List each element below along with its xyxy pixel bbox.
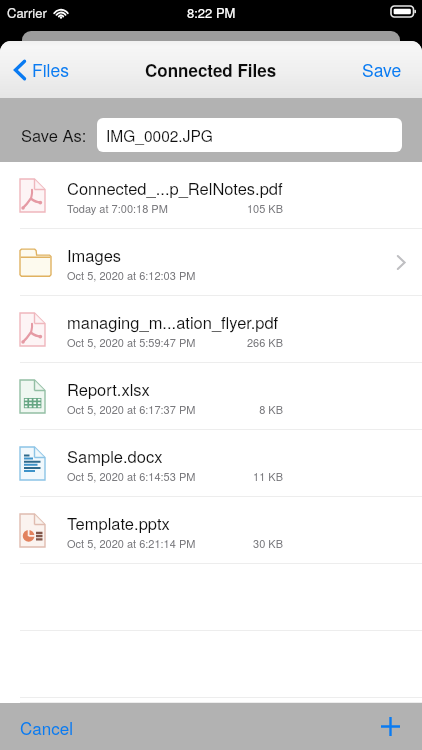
staticText: Connected Files [145, 58, 277, 82]
button[interactable]: Add [367, 709, 422, 744]
button[interactable]: Connected_...p_RelNotes.pdf [0, 162, 422, 229]
button[interactable]: Save [348, 49, 422, 90]
staticText: Save As: [21, 123, 87, 147]
staticText: Oct 5, 2020 at 5:59:47 PM [67, 334, 217, 350]
button[interactable]: managing_m...ation_flyer.pdf [0, 296, 422, 363]
staticText: Carrier [7, 3, 47, 22]
staticText: Report.xlsx [67, 377, 150, 401]
button[interactable]: Report.xlsx [0, 363, 422, 430]
staticText: 266 KB [217, 334, 283, 350]
staticText: Oct 5, 2020 at 6:14:53 PM [67, 468, 217, 484]
staticText: 8 KB [217, 401, 283, 417]
staticText: Oct 5, 2020 at 6:21:14 PM [67, 535, 217, 551]
staticText: 105 KB [217, 200, 283, 216]
staticText: Save [362, 57, 402, 82]
staticText: managing_m...ation_flyer.pdf [67, 310, 279, 334]
staticText: Cancel [20, 715, 73, 739]
staticText: Today at 7:00:18 PM [67, 200, 217, 216]
button[interactable]: Images [0, 229, 422, 296]
staticText: 30 KB [217, 535, 283, 551]
staticText: Template.pptx [67, 511, 170, 535]
staticText: Oct 5, 2020 at 6:17:37 PM [67, 401, 217, 417]
staticText: Files [32, 57, 69, 82]
staticText: Images [67, 243, 122, 267]
staticText: IMG_0002.JPG [106, 124, 213, 146]
staticText: 11 KB [217, 468, 283, 484]
staticText: Oct 5, 2020 at 6:12:03 PM [67, 267, 217, 283]
button[interactable]: Template.pptx [0, 497, 422, 564]
staticText: 8:22 PM [187, 3, 236, 22]
button[interactable]: Sample.docx [0, 430, 422, 497]
button[interactable]: Cancel [0, 705, 93, 749]
button[interactable]: Files [0, 49, 81, 90]
staticText: Connected_...p_RelNotes.pdf [67, 176, 283, 200]
staticText: Sample.docx [67, 444, 163, 468]
button[interactable]: IMG_0002.JPG [97, 118, 402, 152]
